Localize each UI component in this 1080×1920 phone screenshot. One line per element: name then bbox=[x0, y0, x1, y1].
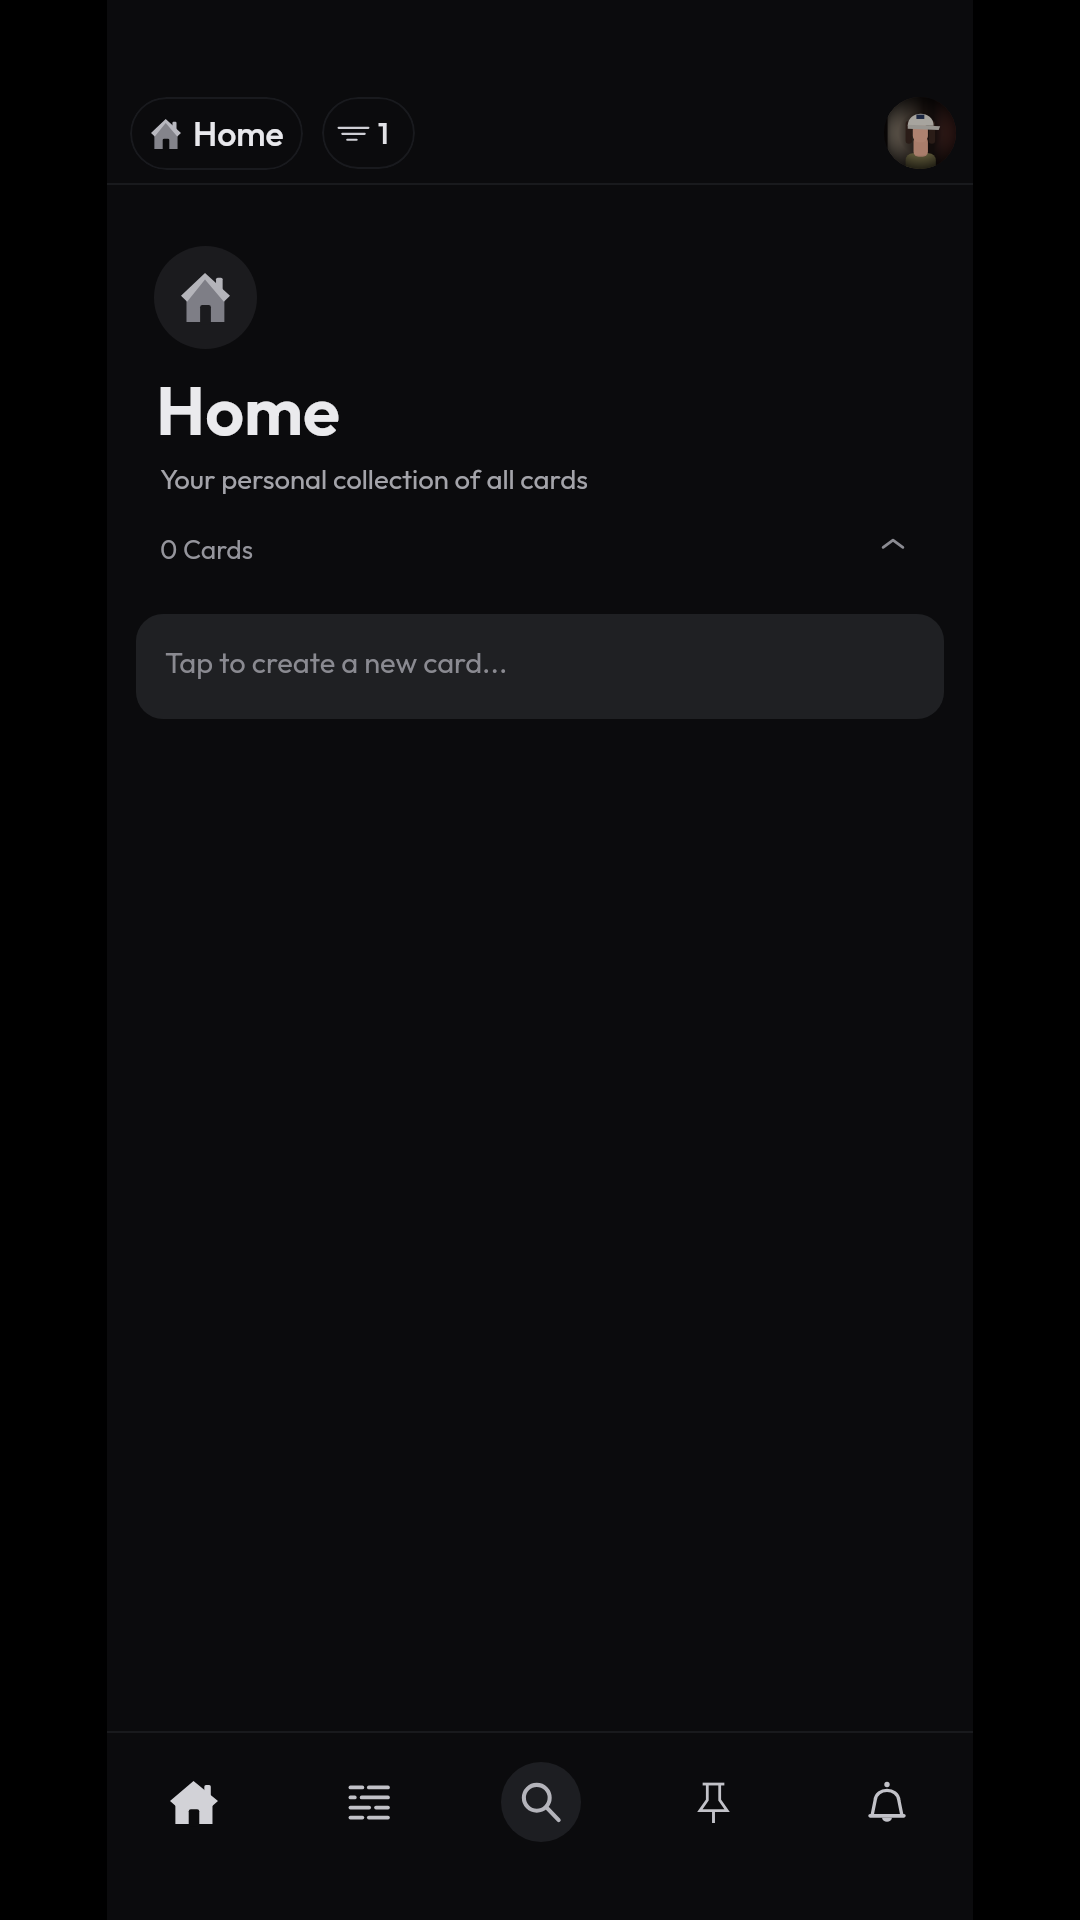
button[interactable]: Pinned bbox=[627, 1733, 800, 1873]
button[interactable]: Home bbox=[107, 1733, 281, 1873]
button[interactable]: Home bbox=[130, 97, 303, 170]
staticText: Home bbox=[156, 367, 340, 453]
staticText: 1 bbox=[378, 114, 389, 152]
button[interactable]: 0 Cards bbox=[107, 520, 973, 576]
staticText: 0 Cards bbox=[160, 532, 254, 565]
staticText: Home bbox=[193, 112, 284, 155]
button[interactable]: Profile bbox=[884, 97, 956, 169]
button[interactable]: Notifications bbox=[800, 1733, 973, 1873]
button[interactable]: Filters, 1 applied bbox=[322, 97, 415, 169]
staticText: Tap to create a new card... bbox=[165, 644, 508, 681]
button[interactable]: Tap to create a new card... bbox=[136, 614, 944, 719]
button[interactable]: Search bbox=[454, 1733, 627, 1873]
button[interactable]: Lists bbox=[281, 1733, 454, 1873]
staticText: Your personal collection of all cards bbox=[160, 461, 588, 496]
